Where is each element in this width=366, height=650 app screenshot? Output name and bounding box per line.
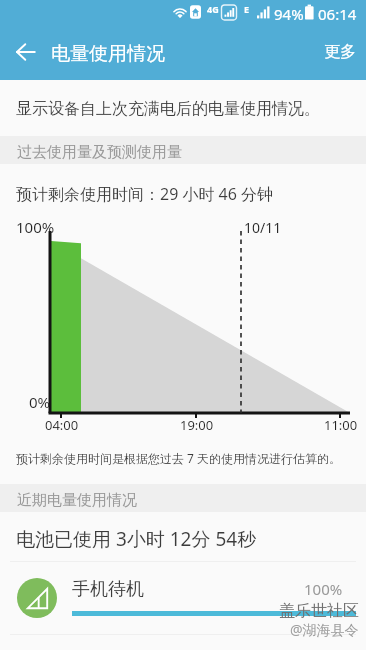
staticText: 0% <box>29 392 51 412</box>
staticText: 过去使用量及预测使用量 <box>17 143 182 162</box>
staticText: 预计剩余使用时间：29 小时 46 分钟 <box>16 183 274 205</box>
staticText: 10/11 <box>244 218 282 237</box>
staticText: 电池已使用 3小时 12分 54秒 <box>16 526 257 552</box>
staticText: 更多 <box>324 42 356 62</box>
staticText: @湖海县令 <box>290 620 359 639</box>
staticText: 4G <box>207 3 219 15</box>
staticText: 11:00 <box>324 416 358 434</box>
button[interactable]: 更多 <box>314 33 366 71</box>
staticText: 电量使用情况 <box>51 42 165 66</box>
staticText: 预计剩余使用时间是根据您过去 7 天的使用情况进行估算的。 <box>16 450 342 466</box>
staticText: 近期电量使用情况 <box>17 491 137 510</box>
staticText: 19:00 <box>180 416 214 434</box>
button[interactable]: 手机待机 <box>0 562 366 634</box>
staticText: 94% <box>274 4 304 24</box>
staticText: 盖乐世社区 <box>279 601 359 621</box>
staticText: 显示设备自上次充满电后的电量使用情况。 <box>16 99 320 119</box>
staticText: 100% <box>16 217 55 237</box>
staticText: E <box>244 3 250 15</box>
button[interactable]: Back <box>4 30 48 74</box>
staticText: 手机待机 <box>72 578 144 601</box>
staticText: 04:00 <box>45 416 79 434</box>
staticText: 100% <box>304 579 343 599</box>
staticText: 06:14 <box>318 4 357 24</box>
